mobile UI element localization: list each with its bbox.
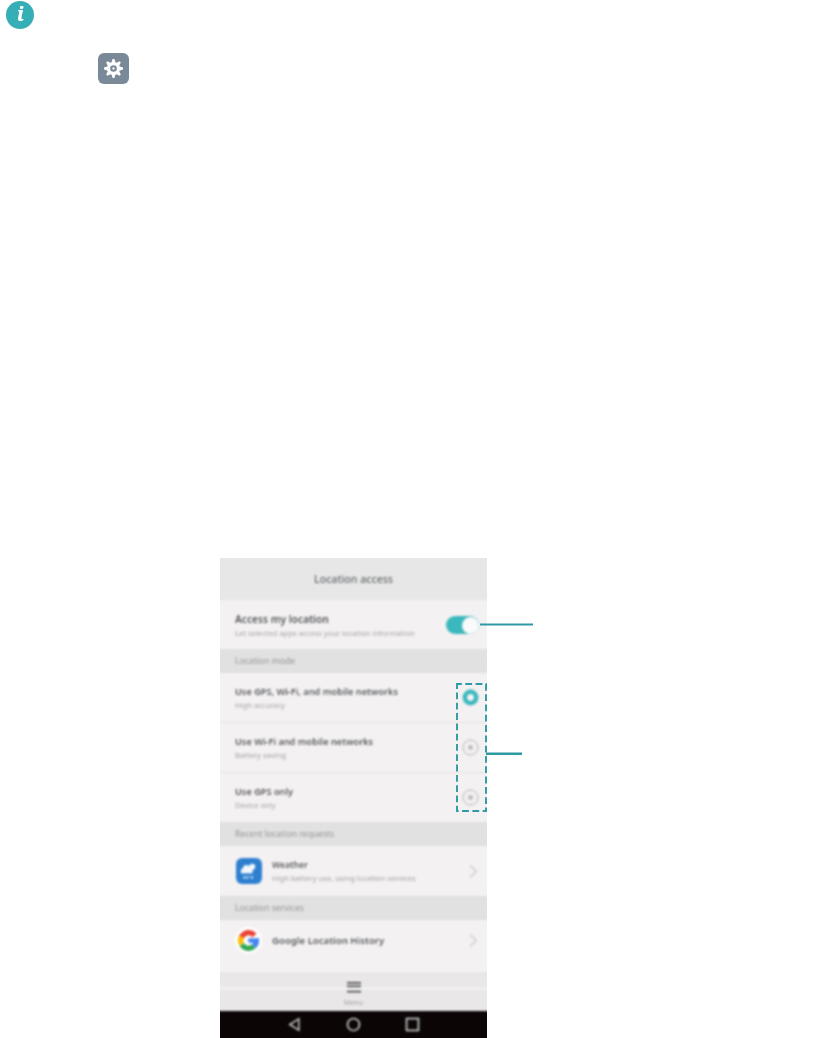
staticText: Device only bbox=[235, 800, 276, 810]
staticText: Recent location requests bbox=[235, 828, 335, 840]
button[interactable]: Use GPS, Wi-Fi, and mobile networks bbox=[220, 673, 487, 722]
staticText: Use Wi-Fi and mobile networks bbox=[235, 735, 374, 748]
button[interactable]: Settings bbox=[98, 53, 129, 84]
staticText: Menu bbox=[344, 998, 363, 1008]
staticText: Let selected apps access your location i… bbox=[235, 628, 415, 638]
button[interactable]: Use GPS only bbox=[220, 773, 487, 822]
button[interactable]: Home bbox=[346, 1017, 361, 1032]
button[interactable]: Use Wi-Fi and mobile networks bbox=[220, 723, 487, 772]
button[interactable]: Menu bbox=[220, 974, 487, 1011]
button[interactable]: Access my location bbox=[220, 600, 487, 649]
button[interactable]: Weather bbox=[220, 846, 487, 896]
button[interactable]: Information bbox=[6, 1, 34, 29]
staticText: High battery use, using location service… bbox=[272, 873, 416, 883]
button[interactable]: Recents bbox=[405, 1017, 420, 1032]
staticText: Use GPS, Wi-Fi, and mobile networks bbox=[235, 685, 399, 698]
staticText: Access my location bbox=[235, 612, 329, 626]
staticText: Battery saving bbox=[235, 750, 287, 760]
staticText: Location mode bbox=[235, 655, 296, 667]
staticText: i bbox=[17, 1, 24, 27]
staticText: Location access bbox=[314, 572, 394, 586]
button[interactable]: Google Location History bbox=[220, 920, 487, 960]
staticText: Location services bbox=[235, 902, 304, 914]
staticText: Weather bbox=[272, 859, 308, 871]
staticText: Google Location History bbox=[272, 934, 469, 947]
button[interactable]: Back bbox=[287, 1017, 302, 1032]
staticText: Use GPS only bbox=[235, 785, 294, 798]
staticText: High accuracy bbox=[235, 700, 285, 710]
